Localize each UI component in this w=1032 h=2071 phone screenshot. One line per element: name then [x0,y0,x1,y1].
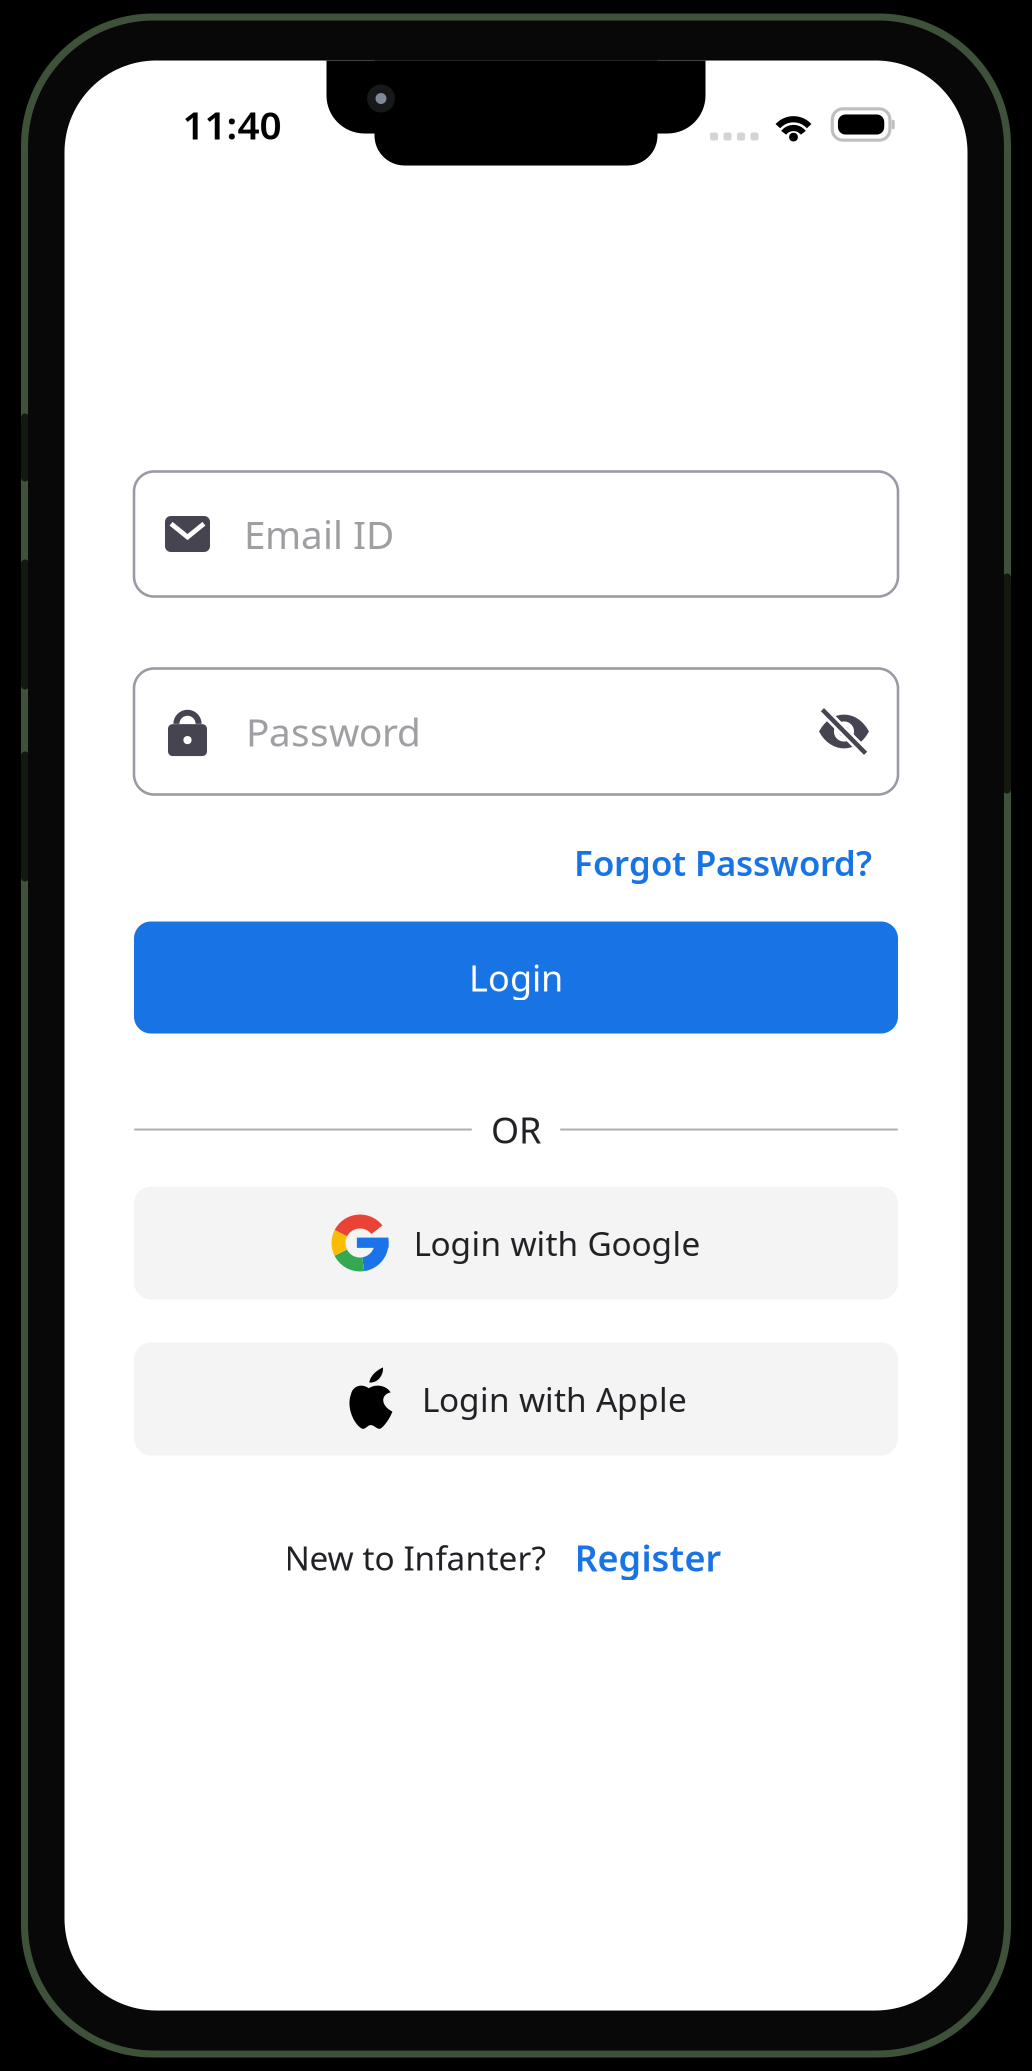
staticText: New to Infanter? [284,1535,545,1580]
button[interactable]: Login [134,921,898,1033]
button[interactable]: Forgot Password? [574,838,898,886]
button[interactable]: Show password [814,701,874,761]
button[interactable]: Password [134,668,898,794]
staticText: Password [246,706,421,757]
button[interactable]: Login with Apple [134,1342,898,1455]
button[interactable]: Login with Google [134,1186,898,1299]
staticText: OR [491,1106,541,1153]
button[interactable]: Register [545,1531,721,1583]
staticText: Login [469,954,563,1001]
button[interactable]: Email ID [134,471,898,596]
staticText: Email ID [244,508,394,560]
staticText: Forgot Password? [574,839,872,885]
staticText: Login with Google [413,1221,700,1265]
staticText: 11:40 [182,99,281,150]
staticText: Register [574,1534,721,1581]
staticText: Login with Apple [422,1377,687,1421]
